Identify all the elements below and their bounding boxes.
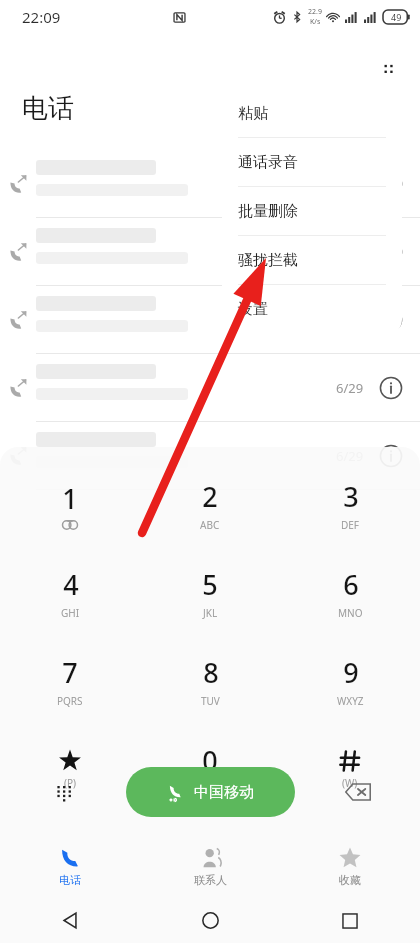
staticText: 收藏 [339,873,361,887]
button[interactable]: 详情 [378,307,404,333]
staticText: 3 [343,478,359,515]
button[interactable]: 通话录音 [222,138,402,187]
button[interactable]: 粘贴 [222,89,402,138]
staticText: PQRS [57,694,83,708]
button[interactable]: 6/29 [0,354,420,422]
staticText: 7 [62,654,78,691]
staticText: 1 [62,480,78,517]
staticText: DEF [341,518,360,532]
button[interactable]: 6/29 [0,422,420,490]
button[interactable]: 主屏幕 [140,898,280,943]
button[interactable]: 6/29 [0,150,420,218]
staticText: 6/29 [336,379,364,397]
button[interactable]: 8 [140,645,280,717]
staticText: + [207,782,213,796]
staticText: 电话 [22,92,74,125]
staticText: K/s [310,17,321,27]
staticText: 中国移动 [194,783,254,802]
button[interactable]: 6/29 [0,218,420,286]
button[interactable]: 联系人 [140,836,280,898]
staticText: TUV [201,694,220,708]
staticText: 粘贴 [238,104,268,123]
staticText: ABC [200,518,220,532]
button[interactable]: 7 [0,645,140,717]
button[interactable]: 6/29 [0,286,420,354]
staticText: 联系人 [194,873,227,887]
staticText: 0 [202,742,218,779]
button[interactable]: 更多选项 [370,50,410,90]
button[interactable]: 2 [140,469,280,541]
staticText: 骚扰拦截 [238,251,298,270]
staticText: 4 [63,566,79,603]
staticText: GHI [61,606,80,620]
staticText: 电话 [59,873,81,887]
button[interactable]: 最近任务 [280,898,420,943]
staticText: 22:09 [22,7,61,27]
button[interactable]: 中国移动 [126,767,295,817]
staticText: (P) [64,776,77,790]
button[interactable]: (P) [0,733,140,805]
button[interactable]: 3 [280,469,420,541]
button[interactable]: 设置 [222,285,402,334]
staticText: 5 [202,566,218,603]
button[interactable]: 详情 [378,443,404,469]
staticText: 批量删除 [238,202,298,221]
staticText: WXYZ [337,694,364,708]
button[interactable]: 详情 [378,239,404,265]
staticText: 6/29 [336,175,364,193]
staticText: JKL [203,606,218,620]
button[interactable]: 1 [0,469,140,541]
staticText: 设置 [238,300,268,319]
button[interactable]: 9 [280,645,420,717]
button[interactable]: 详情 [378,375,404,401]
staticText: MNO [338,606,363,620]
button[interactable]: 5 [140,557,280,629]
button[interactable]: 隐藏拨号键盘 [0,762,126,822]
button[interactable]: 收藏 [280,836,420,898]
button[interactable]: 批量删除 [222,187,402,236]
button[interactable]: 6 [280,557,420,629]
button[interactable]: 0 [140,733,280,805]
button[interactable]: 骚扰拦截 [222,236,402,285]
button[interactable]: 4 [0,557,140,629]
staticText: 6 [343,566,359,603]
staticText: 8 [203,654,219,691]
staticText: 9 [343,654,359,691]
button[interactable]: 删除 [295,762,420,822]
button[interactable]: 返回 [0,898,140,943]
staticText: (W) [342,776,358,790]
button[interactable]: (W) [280,733,420,805]
staticText: 2 [202,478,218,515]
button[interactable]: 详情 [378,171,404,197]
staticText: 22.9 [308,7,322,17]
staticText: 通话录音 [238,153,298,172]
button[interactable]: 电话 [0,836,140,898]
staticText: 49 [391,11,402,23]
